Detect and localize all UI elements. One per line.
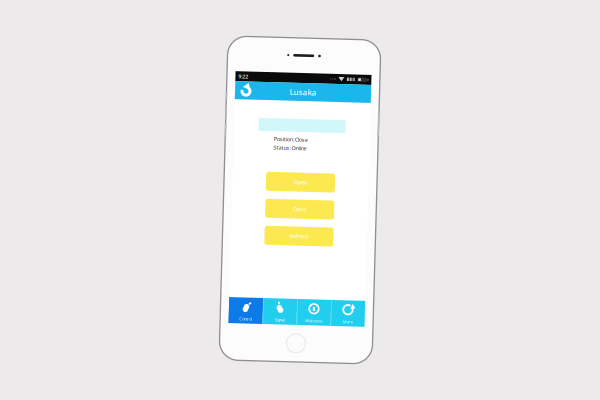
staticText: More (346, 318, 356, 323)
staticText: Signal (278, 318, 288, 323)
staticText: Welcome (308, 318, 325, 323)
staticText: 9:22 (235, 74, 245, 82)
button[interactable]: Close (265, 200, 334, 219)
staticText: Refresh (290, 233, 309, 240)
staticText: Open (293, 179, 306, 186)
button[interactable]: Welcome (300, 299, 334, 325)
button[interactable]: Control (232, 299, 266, 325)
staticText: Close (293, 206, 306, 213)
button[interactable]: Signal (266, 299, 300, 325)
button[interactable]: Refresh (265, 227, 334, 246)
button[interactable]: Back (232, 83, 254, 101)
staticText: Status: Online (272, 145, 305, 152)
staticText: Control (242, 318, 255, 323)
button[interactable]: Open (265, 173, 334, 192)
button[interactable]: More (334, 299, 368, 325)
staticText: Lusaka (286, 87, 313, 97)
staticText: Position: Close (272, 136, 306, 143)
